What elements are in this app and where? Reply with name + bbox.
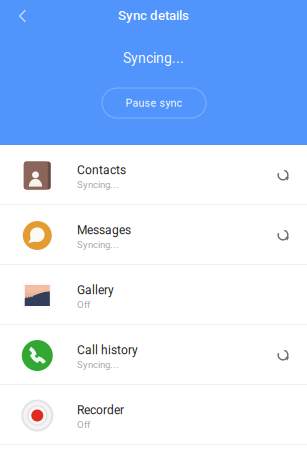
- button[interactable]: Recorder: [0, 385, 307, 445]
- button[interactable]: Pause sync: [102, 88, 206, 118]
- button[interactable]: Gallery: [0, 265, 307, 325]
- button[interactable]: Back: [1, 0, 43, 32]
- button[interactable]: Call history: [0, 325, 307, 385]
- staticText: Gallery: [77, 283, 114, 297]
- staticText: Off: [77, 419, 90, 430]
- staticText: Messages: [77, 223, 131, 237]
- staticText: Call history: [77, 343, 138, 357]
- staticText: Syncing...: [123, 50, 184, 66]
- staticText: Pause sync: [125, 97, 182, 109]
- staticText: Recorder: [77, 403, 124, 417]
- staticText: Off: [77, 299, 90, 310]
- staticText: Syncing...: [77, 179, 119, 190]
- staticText: Syncing...: [77, 359, 119, 370]
- staticText: Sync details: [118, 8, 189, 23]
- button[interactable]: Messages: [0, 205, 307, 265]
- staticText: Contacts: [77, 163, 126, 177]
- staticText: Syncing...: [77, 239, 119, 250]
- button[interactable]: Contacts: [0, 145, 307, 205]
